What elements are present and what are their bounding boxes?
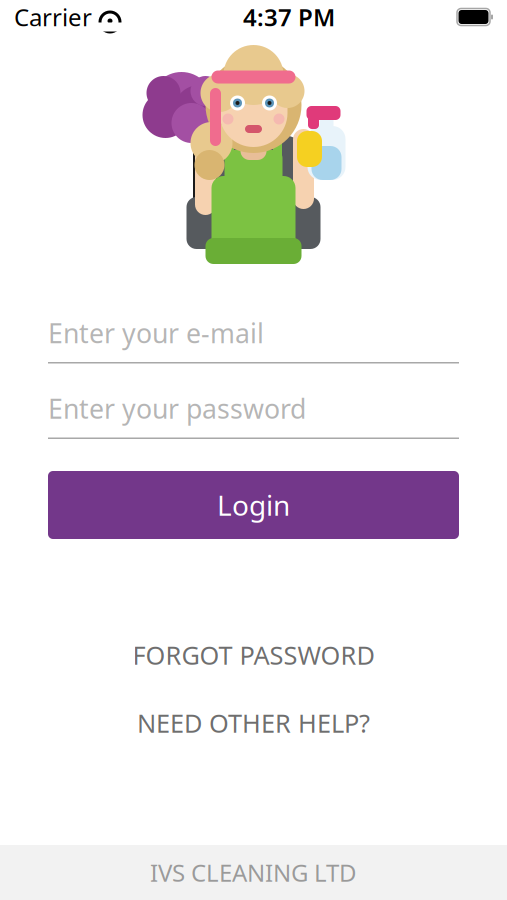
- button[interactable]: Login: [48, 471, 459, 539]
- button[interactable]: NEED OTHER HELP?: [0, 701, 507, 745]
- staticText: Carrier: [14, 1, 92, 33]
- staticText: Enter your password: [48, 391, 306, 426]
- button[interactable]: FORGOT PASSWORD: [0, 633, 507, 677]
- staticText: IVS CLEANING LTD: [150, 857, 357, 888]
- staticText: FORGOT PASSWORD: [132, 638, 374, 672]
- staticText: Login: [217, 486, 290, 524]
- staticText: 4:37 PM: [243, 1, 335, 33]
- staticText: Enter your e-mail: [48, 315, 264, 351]
- staticText: NEED OTHER HELP?: [137, 706, 370, 740]
